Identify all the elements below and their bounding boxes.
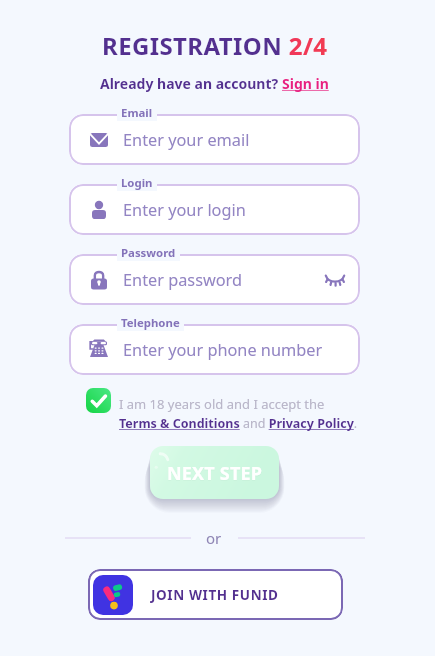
staticText: Telephone: [121, 315, 180, 331]
staticText: Enter your phone number: [123, 339, 323, 361]
button[interactable]: NEXT STEP: [150, 446, 279, 499]
button[interactable]: Enter password: [69, 254, 360, 305]
button[interactable]: Accept terms: [86, 388, 111, 413]
staticText: I am 18 years old and I accept the: [119, 395, 325, 413]
button[interactable]: JOIN WITH FUNID: [88, 569, 343, 620]
button[interactable]: Show password: [323, 268, 347, 292]
staticText: Login: [121, 175, 153, 191]
staticText: NEXT STEP: [167, 462, 263, 487]
button[interactable]: Terms & Conditions and Privacy Policy.: [119, 415, 358, 432]
staticText: Enter password: [123, 269, 243, 291]
staticText: or: [206, 528, 222, 548]
button[interactable]: Enter your email: [69, 114, 360, 165]
button[interactable]: Enter your phone number: [69, 324, 360, 375]
button[interactable]: Enter your login: [69, 184, 360, 235]
staticText: REGISTRATION 2/4: [102, 29, 328, 62]
staticText: Email: [121, 105, 153, 121]
staticText: Already have an account?: [100, 74, 282, 93]
staticText: JOIN WITH FUNID: [151, 586, 279, 604]
staticText: Password: [121, 245, 176, 261]
staticText: Enter your email: [123, 129, 250, 151]
button[interactable]: Sign in: [282, 74, 329, 93]
staticText: NEXT STEP: [167, 461, 263, 486]
staticText: Enter your login: [123, 199, 246, 221]
